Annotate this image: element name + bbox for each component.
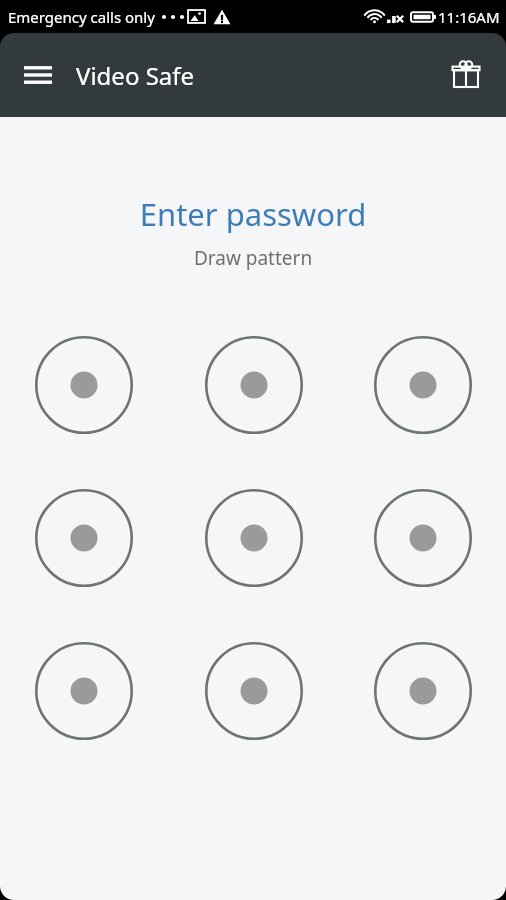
button[interactable]: Pattern dot 7 — [24, 631, 144, 751]
button[interactable]: Pattern dot 1 — [24, 325, 144, 445]
staticText: Video Safe — [76, 59, 195, 92]
button[interactable]: Gift — [440, 49, 492, 101]
button[interactable]: Pattern dot 2 — [194, 325, 314, 445]
button[interactable]: Pattern dot 3 — [363, 325, 483, 445]
button[interactable]: Pattern dot 9 — [363, 631, 483, 751]
button[interactable]: Pattern dot 4 — [24, 478, 144, 598]
button[interactable]: Pattern dot 5 — [194, 478, 314, 598]
staticText: Emergency calls only — [8, 7, 155, 27]
button[interactable]: Open navigation menu — [12, 49, 64, 101]
staticText: Enter password — [0, 193, 506, 235]
staticText: 11:16AM — [438, 7, 500, 27]
button[interactable]: Pattern dot 6 — [363, 478, 483, 598]
button[interactable]: Pattern dot 8 — [194, 631, 314, 751]
staticText: Draw pattern — [0, 245, 506, 271]
